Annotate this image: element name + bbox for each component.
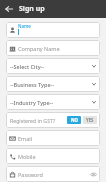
staticText: NO [71, 117, 78, 123]
other: Open dropdown [91, 81, 97, 87]
staticText: Registered in GST? [10, 117, 56, 124]
button[interactable]: --Select City-- [6, 58, 100, 74]
staticText: --Industry Type-- [10, 99, 54, 106]
staticText: Email [18, 135, 33, 142]
button[interactable]: Name [6, 22, 100, 38]
button[interactable]: --Business Type-- [6, 76, 100, 92]
button[interactable]: --Industry Type-- [6, 94, 100, 110]
staticText: Mobile [18, 153, 36, 160]
staticText: Name [18, 23, 31, 29]
button[interactable]: Mobile [6, 148, 100, 164]
button[interactable]: Email [6, 130, 100, 146]
button[interactable]: Registered in GST? [6, 112, 100, 128]
staticText: Password [18, 171, 43, 178]
staticText: --Business Type-- [10, 81, 55, 88]
other: Open dropdown [91, 99, 97, 105]
staticText: --Select City-- [10, 63, 45, 70]
staticText: YES [86, 117, 94, 123]
button[interactable]: Back [3, 3, 15, 15]
button[interactable]: YES [83, 116, 97, 124]
other: Open dropdown [91, 63, 97, 69]
button[interactable]: Show password [90, 171, 97, 178]
staticText: Sign up [19, 4, 45, 14]
staticText: Company Name [18, 45, 60, 52]
button[interactable]: Password [6, 166, 100, 182]
button[interactable]: NO [67, 116, 81, 124]
button[interactable]: Company Name [6, 40, 100, 56]
